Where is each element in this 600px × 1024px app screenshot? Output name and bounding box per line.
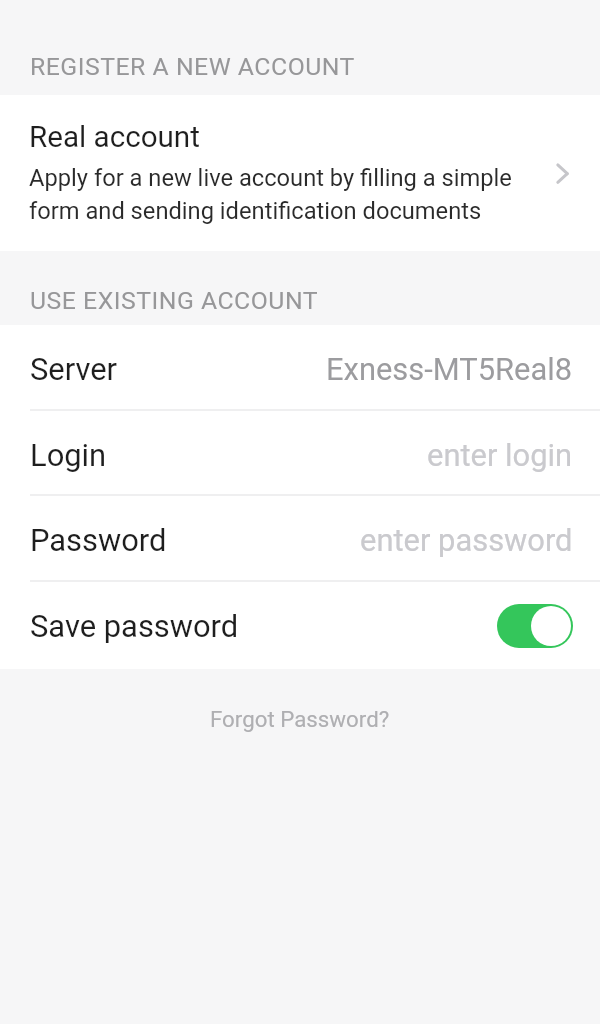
button[interactable]: Save password — [0, 582, 600, 669]
button[interactable]: Forgot Password? — [190, 696, 410, 742]
button[interactable]: Save password, on — [497, 604, 573, 648]
staticText: Forgot Password? — [210, 706, 390, 732]
button[interactable]: Login — [0, 411, 600, 496]
staticText: Login — [30, 437, 107, 473]
staticText: Server — [30, 351, 118, 387]
staticText: Password — [30, 522, 167, 558]
staticText: enter password — [360, 522, 573, 558]
staticText: USE EXISTING ACCOUNT — [30, 286, 319, 315]
staticText: enter login — [427, 437, 573, 473]
button[interactable]: Server — [0, 325, 600, 411]
button[interactable]: Real account — [0, 95, 600, 251]
staticText: Save password — [30, 608, 239, 644]
button[interactable]: Password — [0, 496, 600, 582]
staticText: Apply for a new live account by filling … — [29, 164, 540, 225]
staticText: REGISTER A NEW ACCOUNT — [30, 52, 355, 81]
staticText: Real account — [29, 120, 200, 155]
staticText: Exness-MT5Real8 — [326, 351, 573, 387]
